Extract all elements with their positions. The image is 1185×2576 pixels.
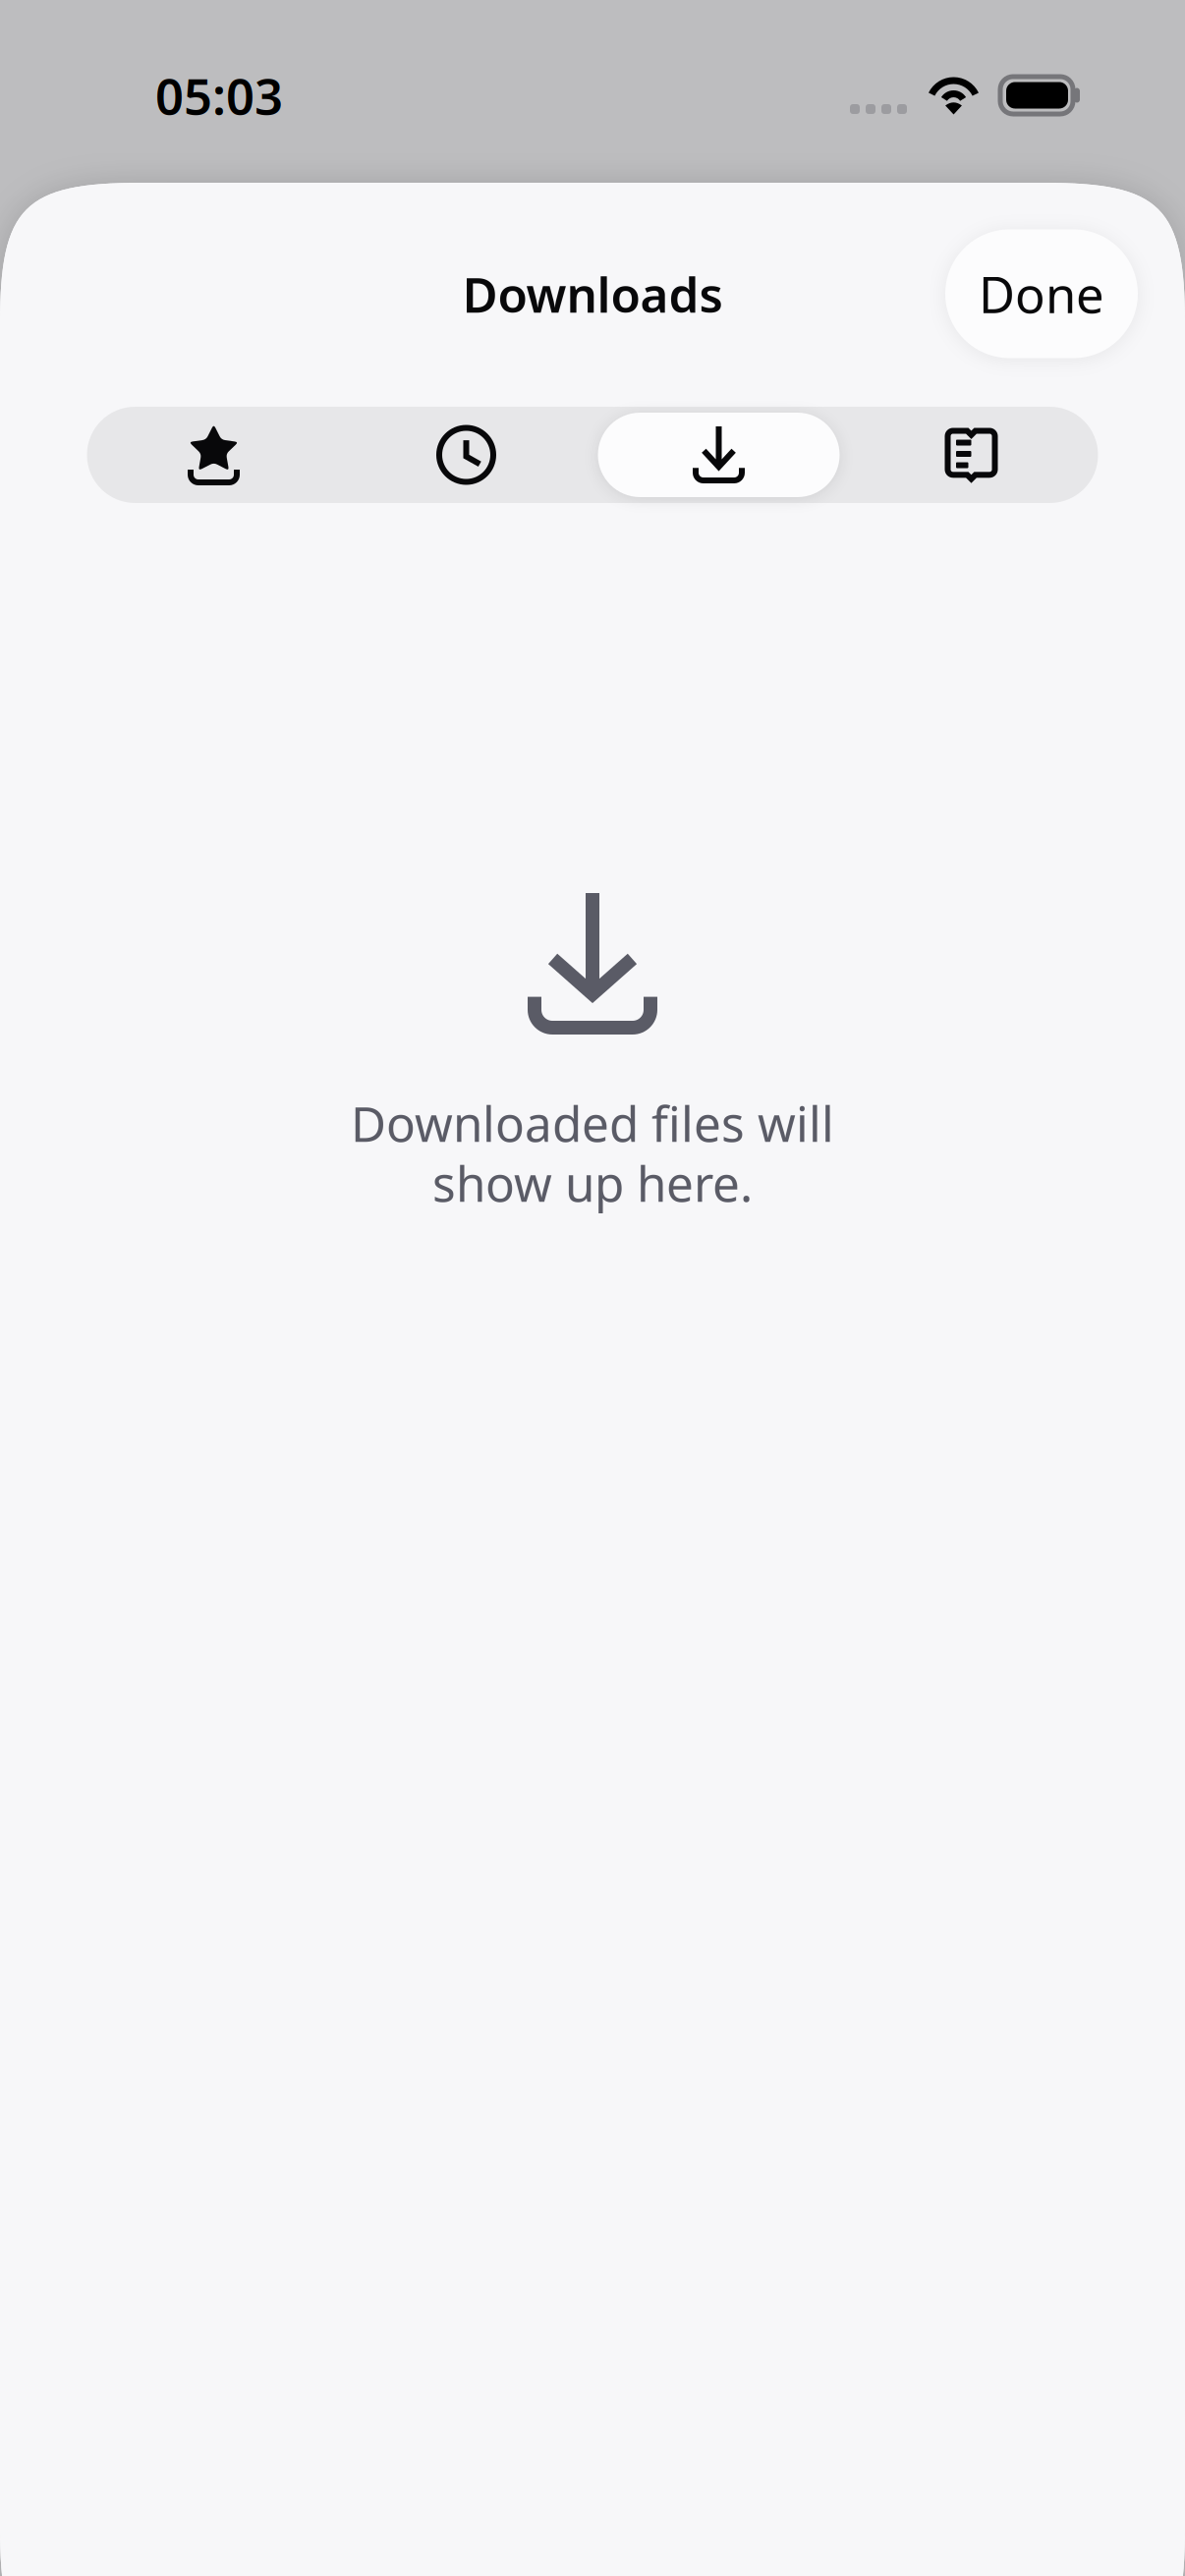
staticText: show up here. xyxy=(432,1151,753,1215)
button[interactable]: History xyxy=(340,407,592,503)
staticText: 05:03 xyxy=(155,62,283,128)
staticText: Downloaded files will xyxy=(351,1091,834,1155)
button[interactable]: Done xyxy=(945,229,1138,358)
button[interactable]: Bookmarks xyxy=(87,407,340,503)
button[interactable]: Reading List xyxy=(845,407,1098,503)
staticText: Done xyxy=(979,261,1104,327)
staticText: Downloads xyxy=(462,262,723,326)
button[interactable]: Downloads xyxy=(592,407,845,503)
